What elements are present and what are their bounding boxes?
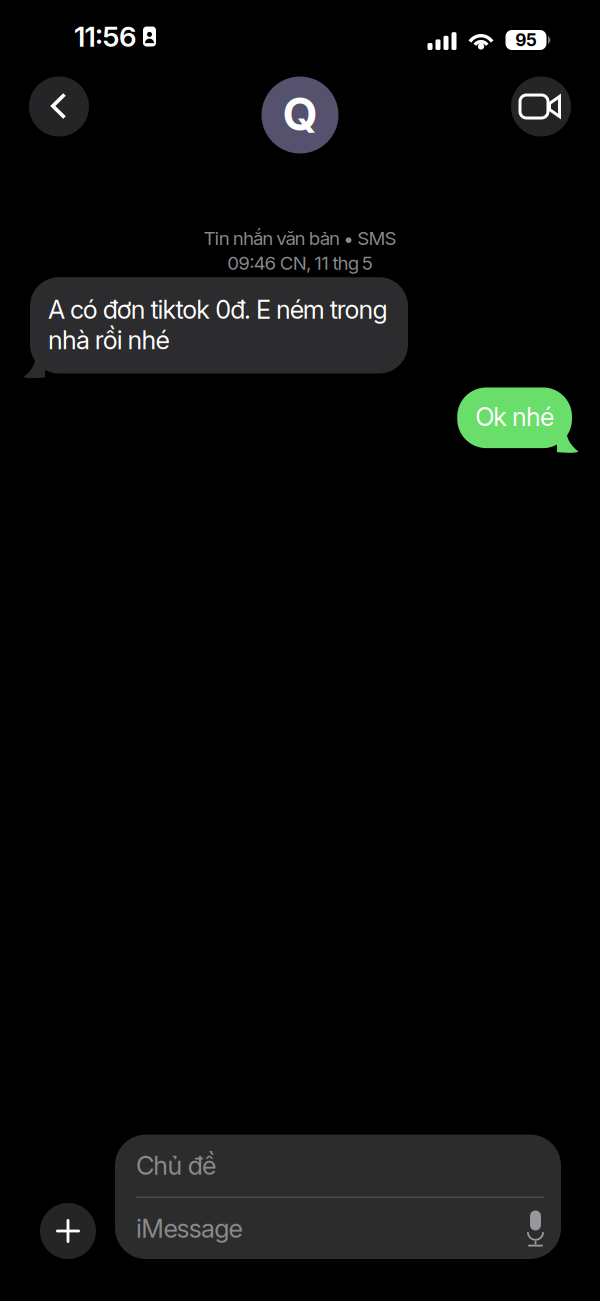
staticText: iMessage [136, 1213, 242, 1244]
staticText: Ok nhé [475, 401, 554, 432]
button[interactable]: Chủ đề [115, 1135, 561, 1259]
button[interactable]: Contact Q [261, 76, 338, 153]
staticText: 09:46 CN, 11 thg 5 [227, 252, 373, 274]
staticText: 11:56 [74, 20, 137, 53]
button[interactable]: FaceTime [511, 76, 571, 136]
button[interactable]: Add attachment [40, 1203, 96, 1259]
staticText: A có đơn tiktok 0đ. E ném trong nhà rồi … [48, 294, 387, 355]
staticText: Q [282, 87, 317, 141]
staticText: Tin nhắn văn bản • SMS [203, 227, 397, 250]
staticText: 95 [515, 29, 537, 50]
staticText: Chủ đề [136, 1150, 216, 1181]
button[interactable]: Back [29, 76, 89, 136]
